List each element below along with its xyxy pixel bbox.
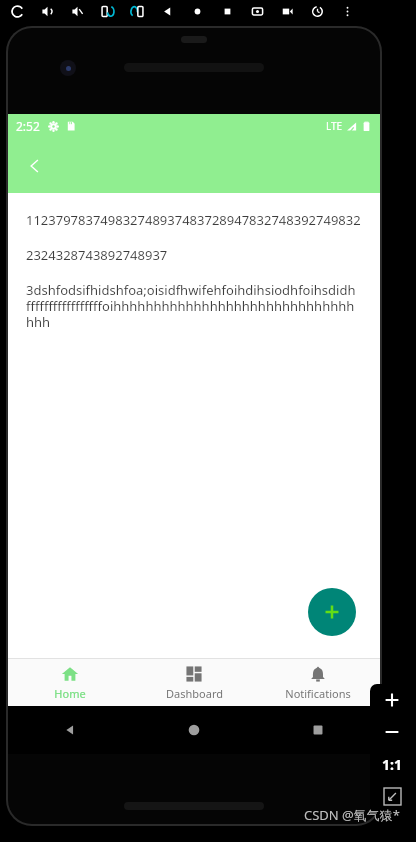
button[interactable]: Zoom out: [370, 716, 414, 748]
button[interactable]: Emulator control: [272, 0, 302, 22]
button[interactable]: Emulator control: [212, 0, 242, 22]
button[interactable]: Add: [308, 588, 356, 636]
button[interactable]: Emulator control: [32, 0, 62, 22]
button[interactable]: Emulator control: [122, 0, 152, 22]
button[interactable]: Emulator control: [152, 0, 182, 22]
button[interactable]: Emulator control: [2, 0, 32, 22]
button[interactable]: Emulator control: [62, 0, 92, 22]
button[interactable]: Emulator control: [242, 0, 272, 22]
staticText: LTE: [326, 119, 343, 133]
staticText: 2324328743892748937: [26, 246, 168, 264]
button[interactable]: 1:1: [370, 748, 414, 780]
staticText: 1:1: [382, 755, 402, 774]
button[interactable]: Dashboard: [132, 659, 256, 706]
staticText: Notifications: [285, 686, 351, 701]
staticText: 3dshfodsifhidshfoa;oisidfhwifehfoihdihsi…: [26, 281, 362, 330]
button[interactable]: Emulator control: [92, 0, 122, 22]
staticText: CSDN @氧气猿*: [304, 806, 400, 824]
button[interactable]: Zoom in: [370, 684, 414, 716]
staticText: Home: [54, 686, 86, 701]
staticText: 2:52: [16, 118, 40, 134]
button[interactable]: Emulator control: [182, 0, 212, 22]
button[interactable]: Navigate up: [16, 147, 54, 185]
button[interactable]: Notifications: [256, 659, 380, 706]
staticText: Dashboard: [166, 686, 223, 701]
button[interactable]: Recent apps: [256, 706, 380, 754]
button[interactable]: Emulator control: [302, 0, 332, 22]
button[interactable]: Emulator control: [332, 0, 362, 22]
button[interactable]: Back: [8, 706, 132, 754]
staticText: 1123797837498327489374837289478327483927…: [26, 211, 361, 229]
button[interactable]: Home: [132, 706, 256, 754]
button[interactable]: Fit to window: [370, 780, 414, 812]
button[interactable]: Home: [8, 659, 132, 706]
